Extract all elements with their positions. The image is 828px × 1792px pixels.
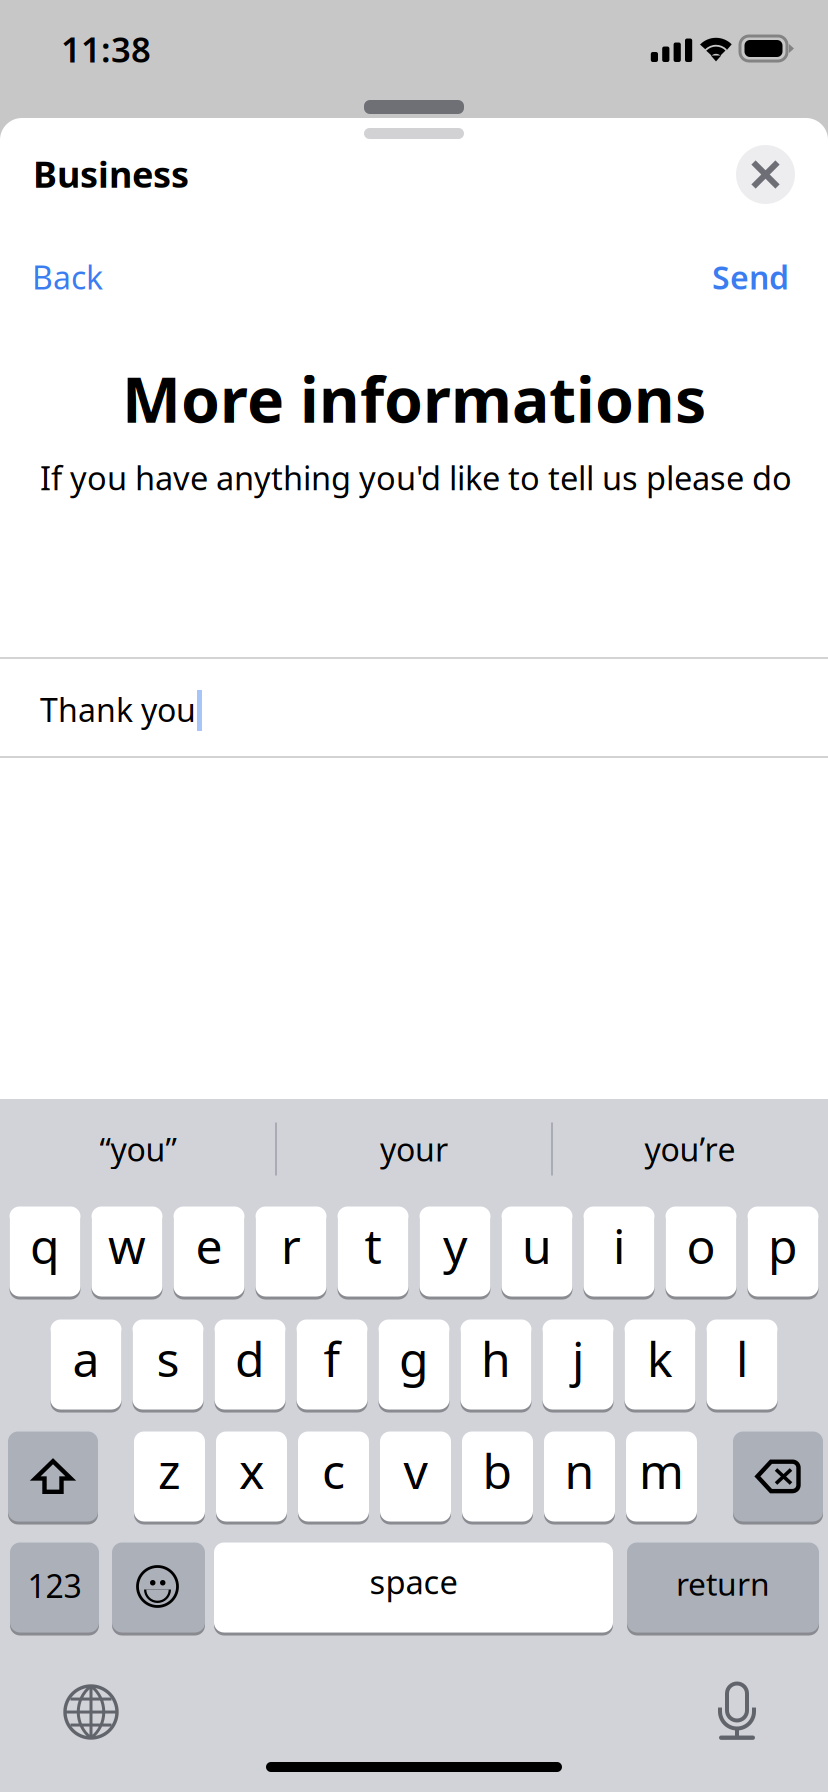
staticText: space bbox=[369, 1560, 457, 1603]
staticText: i bbox=[613, 1214, 625, 1277]
staticText: b bbox=[482, 1439, 512, 1502]
button[interactable]: y bbox=[419, 1205, 490, 1298]
staticText: v bbox=[403, 1439, 427, 1502]
staticText: l bbox=[736, 1327, 748, 1390]
staticText: x bbox=[239, 1439, 264, 1502]
button[interactable]: n bbox=[544, 1430, 615, 1523]
staticText: your bbox=[380, 1128, 448, 1170]
button[interactable]: i bbox=[583, 1205, 654, 1298]
button[interactable]: your bbox=[276, 1110, 552, 1188]
button[interactable]: Send bbox=[679, 249, 789, 305]
button[interactable]: Back bbox=[32, 249, 142, 305]
button[interactable]: Dictate bbox=[698, 1673, 776, 1751]
staticText: m bbox=[639, 1439, 684, 1502]
button[interactable]: q bbox=[9, 1205, 80, 1298]
staticText: d bbox=[235, 1327, 265, 1390]
button[interactable]: c bbox=[298, 1430, 369, 1523]
staticText: 123 bbox=[27, 1564, 81, 1607]
staticText: s bbox=[156, 1327, 179, 1390]
button[interactable]: z bbox=[134, 1430, 205, 1523]
button[interactable]: m bbox=[626, 1430, 697, 1523]
button[interactable]: o bbox=[665, 1205, 736, 1298]
staticText: u bbox=[522, 1214, 552, 1277]
staticText: t bbox=[364, 1214, 381, 1277]
button[interactable]: Close bbox=[736, 145, 795, 204]
button[interactable]: Next keyboard bbox=[52, 1673, 130, 1751]
staticText: Business bbox=[33, 150, 189, 198]
button[interactable]: w bbox=[91, 1205, 162, 1298]
staticText: z bbox=[158, 1439, 181, 1502]
button[interactable]: Delete bbox=[733, 1430, 823, 1523]
staticText: you’re bbox=[644, 1128, 735, 1170]
button[interactable]: Emoji bbox=[112, 1541, 205, 1634]
button[interactable]: e bbox=[173, 1205, 244, 1298]
button[interactable]: return bbox=[627, 1541, 819, 1634]
staticText: o bbox=[686, 1214, 715, 1277]
button[interactable]: r bbox=[255, 1205, 326, 1298]
staticText: Back bbox=[32, 256, 103, 298]
staticText: y bbox=[443, 1214, 467, 1277]
staticText: If you have anything you'd like to tell … bbox=[40, 456, 792, 499]
staticText: g bbox=[399, 1327, 429, 1390]
button[interactable]: d bbox=[214, 1318, 285, 1411]
button[interactable]: space bbox=[214, 1541, 613, 1634]
staticText: p bbox=[768, 1214, 798, 1277]
staticText: Send bbox=[712, 256, 789, 298]
staticText: a bbox=[72, 1327, 99, 1390]
staticText: return bbox=[676, 1562, 770, 1604]
staticText: Thank you bbox=[40, 688, 196, 731]
button[interactable]: k bbox=[624, 1318, 695, 1411]
button[interactable]: f bbox=[296, 1318, 367, 1411]
staticText: j bbox=[572, 1327, 584, 1390]
button[interactable]: b bbox=[462, 1430, 533, 1523]
button[interactable]: s bbox=[132, 1318, 203, 1411]
button[interactable]: a bbox=[50, 1318, 121, 1411]
button[interactable]: “you” bbox=[0, 1110, 276, 1188]
staticText: q bbox=[30, 1214, 60, 1277]
button[interactable]: j bbox=[542, 1318, 613, 1411]
staticText: n bbox=[564, 1439, 594, 1502]
staticText: h bbox=[481, 1327, 511, 1390]
button[interactable]: 123 bbox=[10, 1541, 99, 1634]
button[interactable]: l bbox=[706, 1318, 777, 1411]
button[interactable]: p bbox=[747, 1205, 818, 1298]
staticText: 11:38 bbox=[61, 26, 151, 72]
button[interactable]: Shift bbox=[8, 1430, 98, 1523]
button[interactable]: g bbox=[378, 1318, 449, 1411]
staticText: w bbox=[108, 1214, 146, 1277]
button[interactable]: u bbox=[501, 1205, 572, 1298]
staticText: More informations bbox=[122, 357, 706, 440]
button[interactable]: you’re bbox=[552, 1110, 828, 1188]
staticText: “you” bbox=[99, 1128, 176, 1170]
staticText: r bbox=[281, 1214, 301, 1277]
button[interactable]: t bbox=[337, 1205, 408, 1298]
staticText: f bbox=[323, 1327, 340, 1390]
button[interactable]: v bbox=[380, 1430, 451, 1523]
button[interactable]: h bbox=[460, 1318, 531, 1411]
staticText: c bbox=[322, 1439, 345, 1502]
button[interactable]: x bbox=[216, 1430, 287, 1523]
staticText: e bbox=[195, 1214, 222, 1277]
staticText: k bbox=[647, 1327, 673, 1390]
